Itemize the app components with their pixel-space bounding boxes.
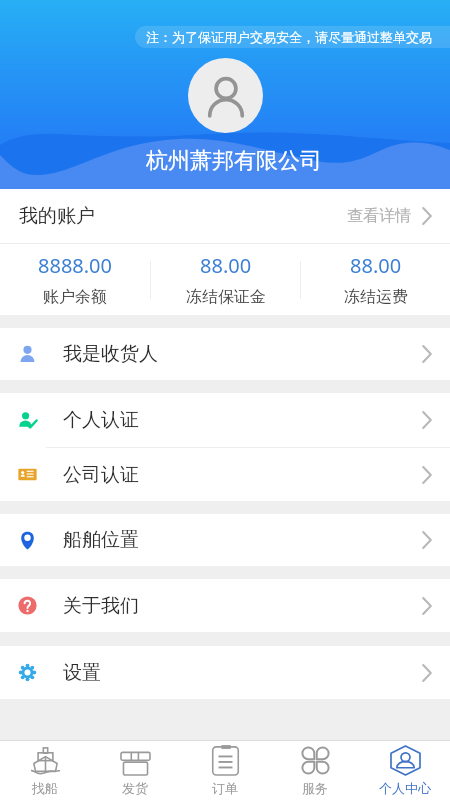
staticText: 个人认证 bbox=[63, 408, 139, 432]
staticText: 船舶位置 bbox=[63, 528, 139, 552]
button[interactable]: 我是收货人 bbox=[0, 328, 450, 380]
button[interactable]: 我的账户 bbox=[0, 189, 450, 243]
button[interactable]: 个人中心 bbox=[360, 741, 450, 800]
button[interactable]: 船舶位置 bbox=[0, 514, 450, 566]
staticText: 找船 bbox=[32, 780, 58, 796]
staticText: 查看详情 bbox=[347, 206, 411, 226]
staticText: 8888.00 bbox=[38, 252, 112, 279]
staticText: 冻结保证金 bbox=[186, 287, 266, 307]
staticText: 我的账户 bbox=[19, 204, 95, 228]
button[interactable]: 发货 bbox=[90, 741, 180, 800]
staticText: 发货 bbox=[122, 780, 148, 796]
staticText: 88.00 bbox=[350, 252, 402, 279]
staticText: 我是收货人 bbox=[63, 342, 158, 366]
staticText: 88.00 bbox=[200, 252, 252, 279]
button[interactable]: 找船 bbox=[0, 741, 90, 800]
button[interactable]: 关于我们 bbox=[0, 579, 450, 632]
staticText: 关于我们 bbox=[63, 594, 139, 618]
staticText: 订单 bbox=[212, 780, 238, 796]
staticText: 注：为了保证用户交易安全，请尽量通过整单交易 bbox=[146, 29, 432, 45]
staticText: 杭州萧邦有限公司 bbox=[146, 147, 322, 175]
staticText: 冻结运费 bbox=[344, 287, 408, 307]
button[interactable]: 服务 bbox=[270, 741, 360, 800]
staticText: 账户余额 bbox=[43, 287, 107, 307]
staticText: 设置 bbox=[63, 661, 101, 685]
button[interactable]: 订单 bbox=[180, 741, 270, 800]
staticText: 个人中心 bbox=[379, 780, 431, 796]
button[interactable]: 个人认证 bbox=[0, 393, 450, 447]
button[interactable]: 设置 bbox=[0, 646, 450, 699]
staticText: 公司认证 bbox=[63, 463, 139, 487]
button[interactable]: 公司认证 bbox=[0, 448, 450, 501]
staticText: 服务 bbox=[302, 780, 328, 796]
